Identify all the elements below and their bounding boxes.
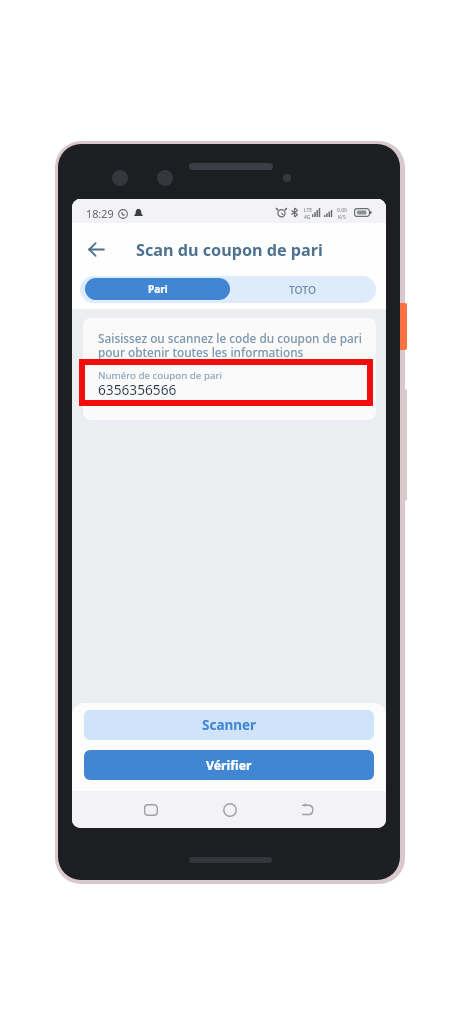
button[interactable]: Vérifier [84,750,374,780]
staticText: 6356356566 [98,380,177,399]
staticText: 4G [304,214,311,221]
button[interactable]: Home [134,793,167,826]
staticText: TOTO [289,283,316,297]
button[interactable]: Pari [85,278,230,300]
staticText: LTE [304,207,313,214]
staticText: 18:29 [86,206,114,221]
button[interactable]: Recent apps [213,793,246,826]
staticText: Vérifier [206,757,252,774]
staticText: Pari [148,282,168,296]
button[interactable]: Scanner [84,710,374,740]
staticText: Scan du coupon de pari [136,239,323,261]
button[interactable]: Back [291,793,324,826]
staticText: Numéro de coupon de pari [98,369,223,382]
button[interactable]: Back [80,233,112,265]
staticText: Saisissez ou scannez le code du coupon d… [98,330,362,360]
button[interactable]: TOTO [229,276,376,303]
staticText: 0.00 [337,207,347,214]
staticText: Scanner [202,716,257,734]
staticText: K/S [338,214,346,221]
